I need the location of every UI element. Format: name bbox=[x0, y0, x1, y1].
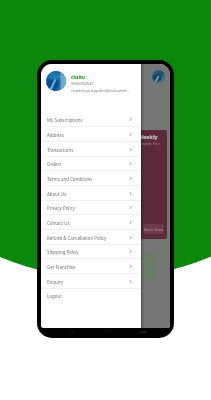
staticText: Refund & Cancellation Policy bbox=[47, 235, 107, 241]
staticText: Orders bbox=[47, 161, 62, 167]
button[interactable]: Refund & Cancellation Policy bbox=[41, 230, 141, 245]
button[interactable]: Weekly Combo bbox=[135, 130, 167, 239]
button[interactable]: Terms and Conditions bbox=[41, 171, 141, 186]
staticText: Contact Us bbox=[47, 220, 70, 226]
button[interactable]: Transactions bbox=[41, 142, 141, 157]
button[interactable]: Book Now bbox=[143, 224, 164, 234]
staticText: Weekly Combo bbox=[138, 133, 167, 140]
button[interactable]: Get Franchise bbox=[41, 259, 141, 274]
button[interactable]: Privacy Policy bbox=[41, 200, 141, 215]
button[interactable]: Orders bbox=[41, 156, 141, 171]
staticText: Terms and Conditions bbox=[47, 176, 93, 182]
staticText: chaitu bbox=[71, 74, 85, 80]
button[interactable]: Logout bbox=[41, 288, 141, 303]
staticText: Get Franchise bbox=[47, 264, 76, 270]
button[interactable] bbox=[136, 253, 158, 280]
staticText: Address bbox=[47, 132, 64, 138]
staticText: Book Now bbox=[144, 227, 164, 232]
staticText: 9966002547 bbox=[71, 81, 94, 86]
button[interactable]: Contact Us bbox=[41, 215, 141, 230]
staticText: My Subscriptions bbox=[47, 117, 83, 123]
staticText: About Us bbox=[47, 191, 67, 197]
staticText: Chapati, Rice, Dal bbox=[138, 141, 167, 146]
button[interactable]: Profile bbox=[152, 70, 165, 83]
staticText: chaitanya.appdev@coloumbusinfotech.com bbox=[71, 88, 131, 94]
staticText: Enquiry bbox=[47, 279, 63, 285]
button[interactable]: Address bbox=[41, 127, 141, 142]
button[interactable]: Enquiry bbox=[41, 274, 141, 289]
button[interactable]: Shipping Policy bbox=[41, 244, 141, 259]
staticText: Shipping Policy bbox=[47, 249, 79, 255]
button[interactable]: About Us bbox=[41, 186, 141, 201]
button[interactable]: My Subscriptions bbox=[41, 112, 141, 127]
staticText: Logout bbox=[47, 293, 62, 299]
staticText: Privacy Policy bbox=[47, 205, 76, 211]
staticText: Transactions bbox=[47, 147, 74, 153]
